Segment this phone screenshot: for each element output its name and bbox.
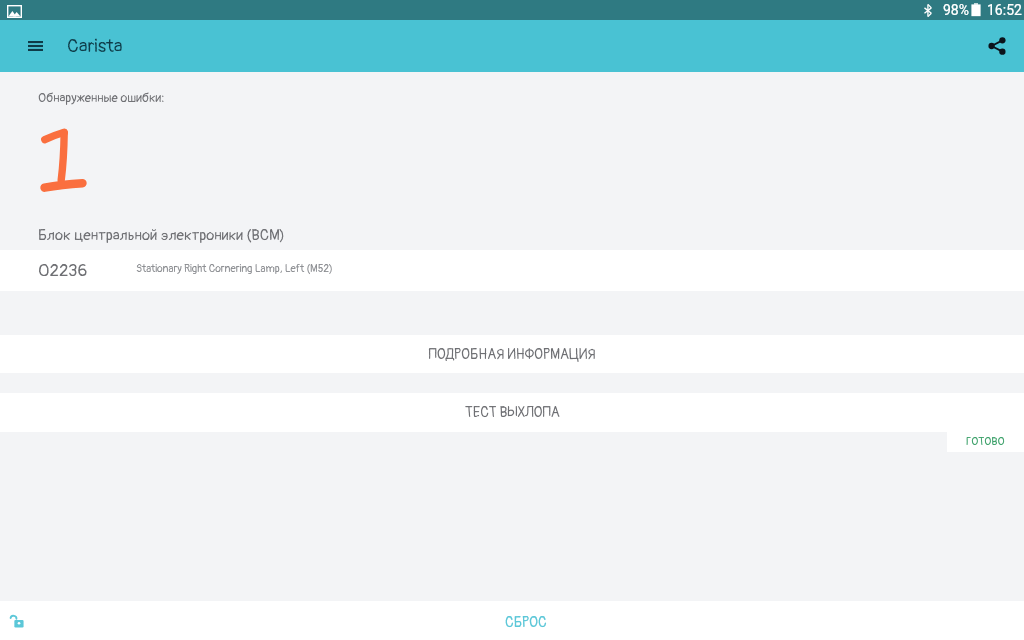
button[interactable]: ТЕСТ ВЫХЛОПА bbox=[0, 393, 1024, 432]
button[interactable]: ГОТОВО bbox=[947, 432, 1024, 452]
button[interactable]: 02236 bbox=[0, 250, 1024, 291]
staticText: ПОДРОБНАЯ ИНФОРМАЦИЯ bbox=[428, 346, 596, 363]
button[interactable]: Open navigation menu bbox=[11, 22, 59, 70]
button[interactable]: ПОДРОБНАЯ ИНФОРМАЦИЯ bbox=[0, 335, 1024, 373]
staticText: 16:52 bbox=[987, 2, 1022, 18]
staticText: Carista bbox=[67, 34, 123, 58]
staticText: ТЕСТ ВЫХЛОПА bbox=[465, 404, 560, 421]
button[interactable]: СБРОС bbox=[485, 605, 567, 640]
staticText: 02236 bbox=[38, 260, 88, 281]
staticText: 98% bbox=[943, 2, 969, 18]
staticText: Обнаруженные ошибки: bbox=[38, 90, 165, 106]
staticText: Stationary Right Cornering Lamp, Left (M… bbox=[136, 262, 333, 275]
staticText: СБРОС bbox=[505, 614, 547, 631]
button[interactable]: Unlock bbox=[0, 604, 34, 638]
staticText: Блок центральной электроники (BCM) bbox=[38, 226, 285, 245]
staticText: ГОТОВО bbox=[966, 435, 1005, 449]
button[interactable]: Share bbox=[973, 22, 1021, 70]
